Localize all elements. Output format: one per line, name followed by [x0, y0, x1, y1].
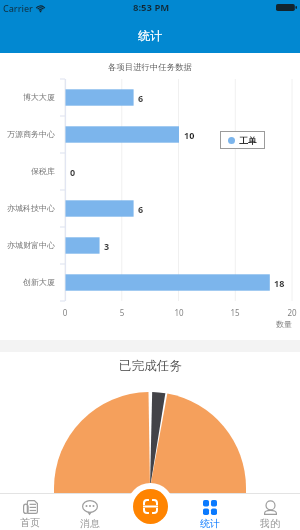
staticText: 20 — [282, 307, 300, 318]
staticText: 0 — [55, 307, 75, 318]
staticText: 15 — [225, 307, 245, 318]
staticText: 统计 — [200, 517, 220, 530]
button[interactable]: 我的 — [240, 493, 300, 530]
staticText: 创新大厦 — [0, 277, 55, 287]
button[interactable]: 首页 — [0, 493, 60, 530]
staticText: 各项目进行中任务数据 — [108, 62, 192, 73]
staticText: 万源商务中心 — [0, 129, 55, 139]
staticText: 5 — [112, 307, 132, 318]
staticText: 工单 — [239, 135, 257, 146]
button[interactable]: 消息 — [60, 493, 120, 530]
staticText: 数量 — [276, 319, 292, 329]
staticText: 8:53 PM — [133, 1, 170, 14]
staticText: 消息 — [80, 517, 100, 530]
staticText: 已完成任务 — [119, 358, 182, 374]
button[interactable]: 统计 — [180, 493, 240, 530]
staticText: 首页 — [20, 516, 40, 529]
staticText: 18 — [274, 277, 285, 289]
staticText: 保税库 — [0, 166, 55, 176]
staticText: 统计 — [138, 28, 162, 43]
staticText: 10 — [169, 307, 189, 318]
staticText: 亦城科技中心 — [0, 203, 55, 213]
staticText: Carrier — [3, 2, 33, 14]
staticText: 0 — [70, 166, 76, 178]
staticText: 6 — [138, 203, 144, 215]
button[interactable]: Scan code — [127, 483, 174, 530]
button[interactable]: 工单 — [220, 131, 265, 149]
staticText: 亦城财富中心 — [0, 240, 55, 250]
staticText: 10 — [184, 129, 195, 141]
staticText: 6 — [138, 92, 144, 104]
staticText: 博大大厦 — [0, 92, 55, 102]
staticText: 3 — [104, 240, 110, 252]
staticText: 我的 — [260, 517, 280, 530]
